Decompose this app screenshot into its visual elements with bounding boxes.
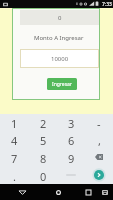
button[interactable]: - xyxy=(85,114,113,131)
button[interactable]: Ingresar xyxy=(47,78,77,90)
button[interactable]: Backspace xyxy=(85,148,113,166)
button[interactable]: 8 xyxy=(29,148,57,166)
staticText: . xyxy=(13,169,16,184)
staticText: 7:33 xyxy=(102,1,112,8)
button[interactable]: 9 xyxy=(57,148,85,166)
button[interactable]: Enter xyxy=(85,166,113,184)
staticText: 10000 xyxy=(51,55,69,63)
staticText: - xyxy=(97,116,101,131)
button[interactable]: Recents xyxy=(77,184,99,200)
staticText: 4 xyxy=(11,133,18,148)
button[interactable]: 5 xyxy=(29,131,57,148)
staticText: , xyxy=(98,133,101,148)
button[interactable]: Hide keyboard xyxy=(97,184,113,200)
button[interactable]: Back xyxy=(11,184,33,200)
button[interactable]: Home xyxy=(47,184,69,200)
staticText: 3 xyxy=(68,116,75,131)
staticText: 2 xyxy=(40,116,47,131)
staticText: Ingresar xyxy=(52,81,72,88)
staticText: Monto A Ingresar xyxy=(34,34,84,42)
button[interactable]: 2 xyxy=(29,114,57,131)
button[interactable]: 1 xyxy=(0,114,29,131)
button[interactable]: Space xyxy=(57,166,85,184)
staticText: 0 xyxy=(40,169,47,184)
button[interactable]: 6 xyxy=(57,131,85,148)
staticText: 5 xyxy=(40,133,47,148)
button[interactable]: . xyxy=(0,166,29,184)
button[interactable]: 7 xyxy=(0,148,29,166)
button[interactable]: 4 xyxy=(0,131,29,148)
staticText: 8 xyxy=(40,151,47,166)
button[interactable]: 3 xyxy=(57,114,85,131)
button[interactable]: 0 xyxy=(29,166,57,184)
staticText: 1 xyxy=(11,116,18,131)
staticText: 0 xyxy=(58,14,62,22)
staticText: 9 xyxy=(68,151,75,166)
staticText: 7 xyxy=(11,151,18,166)
staticText: 6 xyxy=(68,133,75,148)
button[interactable]: , xyxy=(85,131,113,148)
